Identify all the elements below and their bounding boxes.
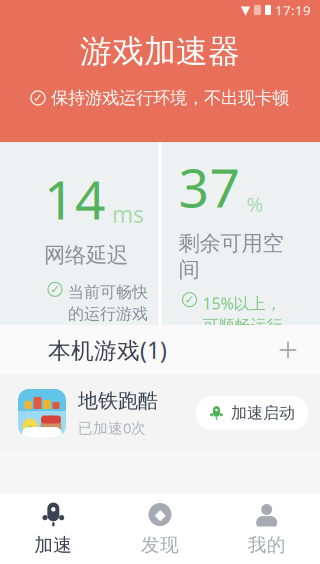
button[interactable]: 地铁跑酷	[0, 375, 320, 451]
staticText: 网络延迟	[44, 242, 128, 268]
button[interactable]: ◆	[107, 494, 213, 564]
button[interactable]: 添加游戏	[268, 330, 308, 370]
staticText: ✓	[33, 91, 43, 105]
staticText: ◆	[154, 506, 165, 523]
staticText: ✓	[184, 293, 194, 306]
staticText: 可顺畅运行	[202, 316, 282, 336]
staticText: 地铁跑酷	[78, 388, 158, 413]
staticText: ▼	[241, 3, 250, 17]
staticText: 剩余可用空	[178, 230, 283, 256]
staticText: ✓	[50, 283, 60, 296]
staticText: 当前可畅快	[68, 282, 148, 302]
staticText: 发现	[141, 533, 179, 556]
staticText: 保持游戏运行环境，不出现卡顿	[51, 87, 289, 109]
staticText: %	[246, 191, 263, 217]
staticText: ms	[112, 199, 144, 229]
staticText: 间	[178, 256, 199, 283]
staticText: 15%以上，	[202, 293, 281, 314]
staticText: 本机游戏(1)	[48, 335, 167, 365]
staticText: 已加速0次	[78, 418, 146, 437]
staticText: 37	[178, 151, 240, 222]
button[interactable]: 加速	[0, 494, 107, 564]
staticText: 加速启动	[231, 403, 295, 423]
staticText: 的运行游戏	[68, 304, 148, 324]
staticText: 我的	[248, 533, 286, 556]
staticText: 游戏加速器	[80, 32, 240, 71]
staticText: 17:19	[275, 1, 311, 19]
staticText: 加速	[34, 533, 72, 556]
button[interactable]: 我的	[213, 494, 320, 564]
staticText: 14	[44, 163, 106, 234]
